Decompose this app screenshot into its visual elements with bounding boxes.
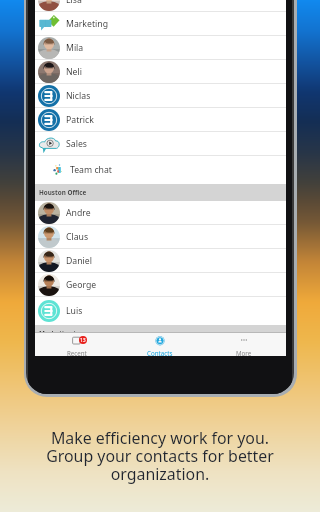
staticText: Marketing team — [39, 329, 90, 338]
staticText: Daniel — [66, 255, 92, 267]
staticText: 13 — [80, 337, 86, 344]
button[interactable]: Neli — [35, 60, 286, 84]
button[interactable]: Lisa — [35, 0, 286, 12]
staticText: More — [236, 349, 252, 356]
staticText: Marketing — [66, 18, 108, 30]
staticText: Recent — [67, 349, 87, 356]
staticText: Claus — [66, 231, 89, 243]
staticText: Patrick — [66, 114, 94, 126]
button[interactable]: Marketing — [35, 12, 286, 36]
button[interactable]: More — [202, 333, 286, 356]
staticText: Niclas — [66, 90, 91, 102]
button[interactable]: Niclas — [35, 84, 286, 108]
staticText: Sales — [66, 138, 87, 150]
button[interactable]: Patrick — [35, 108, 286, 132]
button[interactable]: Team chat — [35, 156, 286, 184]
other: Contacts — [155, 336, 165, 346]
staticText: Luis — [66, 305, 83, 317]
button[interactable]: Claus — [35, 225, 286, 249]
button[interactable]: Recent — [35, 333, 118, 356]
staticText: Lisa — [66, 0, 82, 6]
button[interactable]: Mila — [35, 36, 286, 60]
staticText: Mila — [66, 42, 84, 54]
staticText: Andre — [66, 207, 91, 219]
staticText: George — [66, 279, 97, 291]
staticText: Neli — [66, 66, 82, 78]
button[interactable]: Contacts — [118, 333, 202, 356]
button[interactable]: Andre — [35, 201, 286, 225]
other: Recent — [72, 336, 82, 346]
staticText: Houston Office — [39, 188, 87, 197]
staticText: Contacts — [147, 349, 173, 356]
staticText: Make efficiency work for you. Group your… — [46, 427, 274, 485]
button[interactable]: Sales — [35, 132, 286, 156]
button[interactable]: Daniel — [35, 249, 286, 273]
staticText: Team chat — [70, 164, 112, 176]
button[interactable]: Luis — [35, 297, 286, 325]
other: More — [239, 336, 249, 346]
button[interactable]: George — [35, 273, 286, 297]
